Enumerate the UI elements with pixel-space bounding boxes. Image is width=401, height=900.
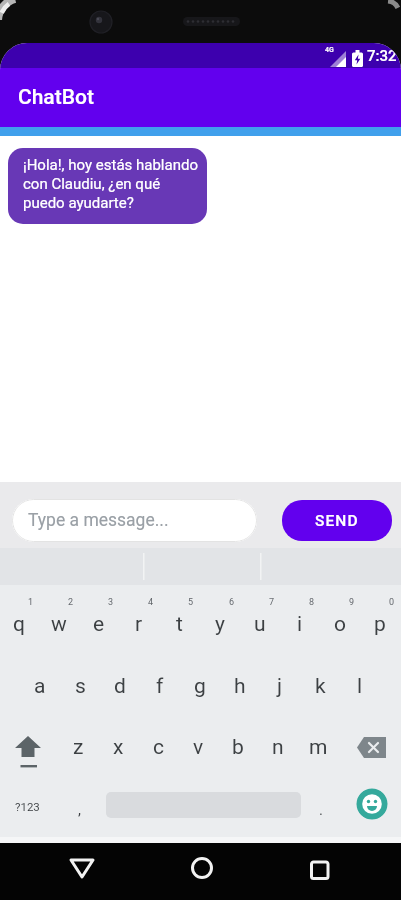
staticText: c [153,735,164,760]
staticText: 0 [389,597,395,608]
staticText: ?123 [15,800,40,813]
staticText: j [277,674,283,699]
staticText: r [135,612,143,637]
button[interactable] [180,846,224,890]
button[interactable]: m [298,730,338,764]
staticText: o [334,612,346,637]
button[interactable]: w [39,607,79,641]
staticText: g [194,674,206,699]
staticText: ¡Hola!, hoy estás hablando con Claudiu, … [23,156,198,212]
button[interactable]: q [0,607,39,641]
staticText: k [315,674,326,699]
staticText: e [93,612,105,637]
button[interactable] [296,846,340,890]
button[interactable]: g [180,669,220,703]
staticText: 9 [349,597,355,608]
button[interactable]: c [138,730,178,764]
button[interactable]: n [258,730,298,764]
button[interactable]: a [20,669,60,703]
staticText: s [75,674,86,699]
button[interactable]: v [178,730,218,764]
button[interactable] [10,733,46,773]
button[interactable]: l [340,669,380,703]
staticText: w [51,612,67,637]
staticText: , [78,801,81,819]
button[interactable] [60,846,104,890]
button[interactable]: x [98,730,138,764]
button[interactable]: . [301,793,341,827]
button[interactable]: u [240,607,280,641]
staticText: ChatBot [18,85,94,110]
staticText: z [73,735,84,760]
staticText: l [357,674,363,699]
button[interactable]: r [119,607,159,641]
staticText: m [309,735,328,760]
staticText: p [374,612,386,637]
staticText: y [215,612,225,637]
staticText: 8 [309,597,315,608]
button[interactable]: j [260,669,300,703]
staticText: SEND [315,512,359,530]
staticText: 4 [148,597,154,608]
button[interactable]: e [79,607,119,641]
staticText: 7:32 [367,47,397,65]
staticText: 5 [188,597,194,608]
staticText: b [232,735,244,760]
button[interactable]: i [280,607,320,641]
button[interactable]: k [300,669,340,703]
button[interactable]: Type a message... [12,499,257,542]
staticText: q [13,612,25,637]
staticText: . [319,801,323,819]
button[interactable]: z [58,730,98,764]
staticText: 2 [68,597,74,608]
staticText: n [272,735,284,760]
button[interactable]: f [140,669,180,703]
staticText: d [114,674,126,699]
staticText: 7 [269,597,275,608]
staticText: 1 [28,597,34,608]
button[interactable] [355,735,391,761]
button[interactable]: b [218,730,258,764]
button[interactable]: , [59,793,99,827]
staticText: x [113,735,124,760]
staticText: Type a message... [28,510,169,531]
button[interactable]: s [60,669,100,703]
button[interactable]: ¡Hola!, hoy estás hablando con Claudiu, … [8,148,207,224]
button[interactable]: d [100,669,140,703]
staticText: v [193,735,204,760]
button[interactable]: ?123 [7,789,47,823]
button[interactable] [356,788,388,820]
staticText: u [254,612,266,637]
staticText: 3 [108,597,114,608]
staticText: f [156,674,164,699]
button[interactable]: t [159,607,199,641]
button[interactable]: h [220,669,260,703]
staticText: t [176,612,183,637]
button[interactable]: SEND [282,500,392,541]
staticText: 4G [325,46,334,54]
button[interactable]: y [200,607,240,641]
staticText: 6 [229,597,235,608]
button[interactable]: o [320,607,360,641]
staticText: h [234,674,246,699]
staticText: a [34,674,46,699]
button[interactable]: p [360,607,400,641]
staticText: i [297,612,303,637]
